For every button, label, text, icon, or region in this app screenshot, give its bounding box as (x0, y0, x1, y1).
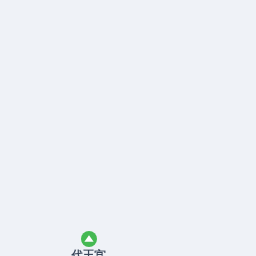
button[interactable]: 代王宫 (71, 231, 106, 247)
staticText: 代王宫 (71, 248, 106, 256)
